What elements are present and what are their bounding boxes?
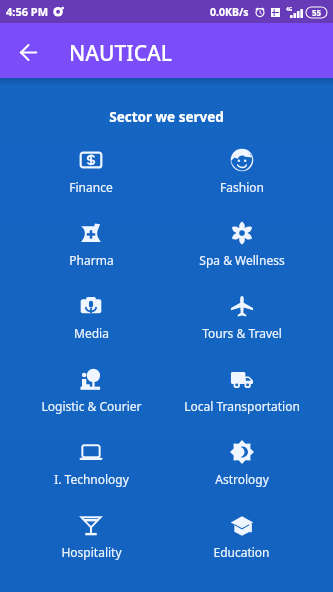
button[interactable]: Fashion	[166, 148, 317, 195]
button[interactable]: Back	[11, 35, 45, 69]
staticText: Finance	[69, 179, 113, 195]
button[interactable]: I. Technology	[16, 440, 166, 487]
staticText: Hospitality	[61, 544, 122, 560]
staticText: Tours & Travel	[202, 325, 282, 341]
staticText: Astrology	[215, 471, 269, 487]
button[interactable]: Pharma	[16, 221, 166, 268]
staticText: 55	[312, 7, 322, 18]
staticText: Sector we served	[0, 108, 333, 126]
button[interactable]: Logistic & Courier	[16, 367, 166, 414]
staticText: NAUTICAL	[69, 39, 173, 68]
button[interactable]: Local Transportation	[166, 367, 317, 414]
button[interactable]: Media	[16, 294, 166, 341]
button[interactable]: Finance	[16, 148, 166, 195]
staticText: Media	[74, 325, 109, 341]
staticText: Spa & Wellness	[199, 252, 285, 268]
button[interactable]: Spa & Wellness	[166, 221, 317, 268]
staticText: Pharma	[69, 252, 114, 268]
staticText: I. Technology	[54, 471, 129, 487]
staticText: Local Transportation	[184, 398, 300, 414]
button[interactable]: Tours & Travel	[166, 294, 317, 341]
button[interactable]: Hospitality	[16, 513, 166, 560]
staticText: 0.0KB/s	[210, 5, 249, 19]
staticText: Logistic & Courier	[41, 398, 142, 414]
staticText: 4G	[286, 6, 293, 13]
staticText: 4:56 PM	[6, 4, 49, 19]
staticText: Fashion	[220, 179, 264, 195]
button[interactable]: Education	[166, 513, 317, 560]
staticText: Education	[213, 544, 270, 560]
button[interactable]: Astrology	[166, 440, 317, 487]
